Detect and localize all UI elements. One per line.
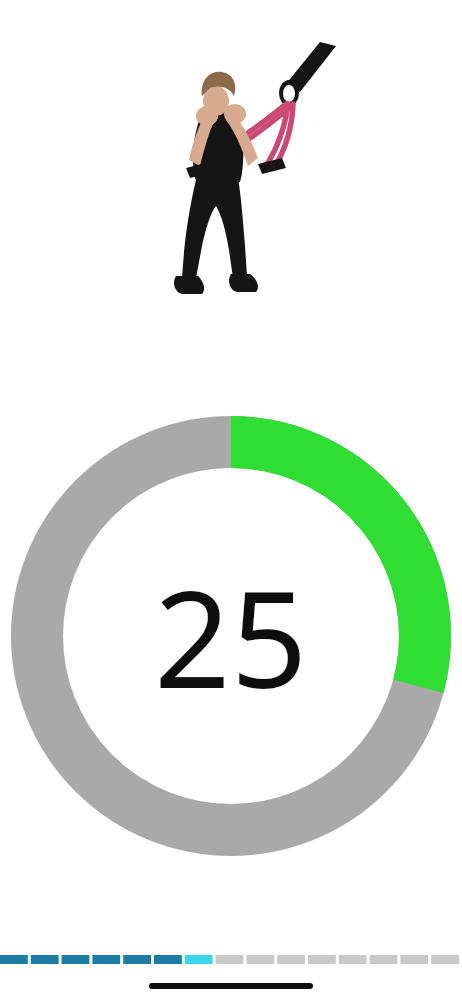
button[interactable]: Pause timer [11,416,451,856]
button[interactable]: Workout progress, exercise 7 of 15 [0,953,462,966]
button[interactable]: Exercise demonstration [0,0,462,390]
staticText: 25 [154,545,308,728]
